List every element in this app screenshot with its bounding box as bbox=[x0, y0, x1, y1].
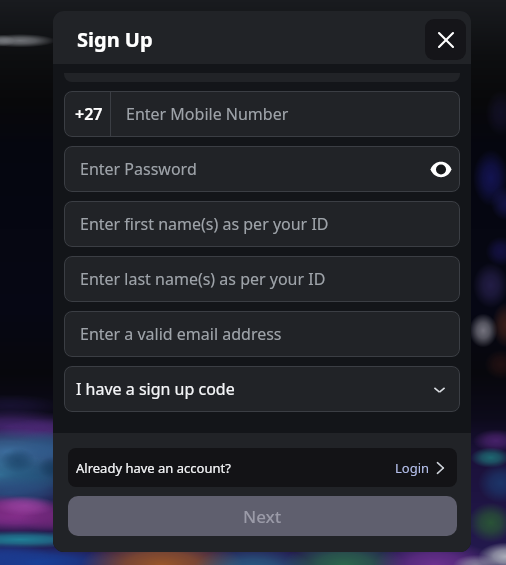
button[interactable]: Close bbox=[425, 19, 466, 60]
staticText: Enter Password bbox=[80, 158, 197, 180]
staticText: Already have an account? bbox=[76, 459, 231, 477]
staticText: Enter a valid email address bbox=[80, 323, 282, 345]
staticText: Enter first name(s) as per your ID bbox=[80, 213, 329, 235]
staticText: Enter last name(s) as per your ID bbox=[80, 268, 326, 290]
button[interactable]: I have a sign up code bbox=[64, 366, 460, 412]
staticText: Login bbox=[395, 459, 430, 477]
button[interactable]: Already have an account? bbox=[68, 448, 457, 487]
staticText: +27 bbox=[75, 103, 103, 125]
button[interactable]: +27 bbox=[64, 91, 460, 137]
staticText: Sign Up bbox=[77, 26, 153, 53]
button[interactable]: Next bbox=[68, 496, 457, 536]
staticText: I have a sign up code bbox=[76, 378, 235, 400]
button[interactable]: Enter last name(s) as per your ID bbox=[64, 256, 460, 302]
button[interactable]: Enter a valid email address bbox=[64, 311, 460, 357]
button[interactable]: Enter first name(s) as per your ID bbox=[64, 201, 460, 247]
button[interactable]: Show password bbox=[430, 159, 452, 179]
staticText: Enter Mobile Number bbox=[126, 103, 289, 125]
staticText: Next bbox=[243, 505, 282, 528]
button[interactable]: Enter Password bbox=[64, 146, 460, 192]
